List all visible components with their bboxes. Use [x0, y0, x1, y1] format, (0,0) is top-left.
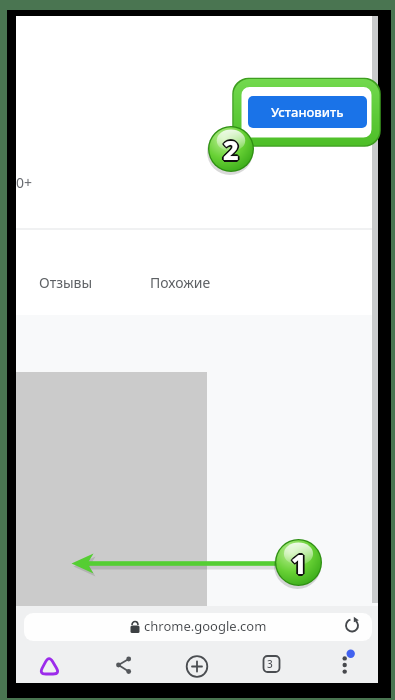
button[interactable] — [179, 647, 216, 683]
button[interactable]: Установить — [248, 96, 367, 128]
staticText: 1 — [289, 545, 305, 582]
staticText: 2 — [223, 129, 239, 166]
staticText: 2 — [223, 131, 239, 168]
staticText: chrome.google.com — [144, 617, 267, 635]
staticText: 2 — [225, 131, 241, 168]
staticText: 1 — [290, 546, 306, 583]
staticText: 1 — [290, 544, 306, 581]
staticText: 1 — [291, 547, 307, 584]
staticText: Отзывы — [39, 273, 93, 292]
staticText: Установить — [271, 103, 344, 121]
button[interactable] — [24, 613, 372, 641]
staticText: 1 — [291, 545, 307, 582]
staticText: 2 — [224, 132, 240, 169]
staticText: Похожие — [150, 273, 211, 292]
staticText: 1 — [291, 543, 307, 580]
staticText: 00+ — [16, 173, 33, 192]
button[interactable] — [327, 647, 364, 683]
button[interactable]: Отзывы — [32, 264, 104, 298]
button[interactable] — [105, 647, 142, 683]
button[interactable] — [31, 647, 68, 683]
staticText: 1 — [292, 544, 308, 581]
staticText: 2 — [222, 132, 238, 169]
staticText: 3 — [267, 657, 273, 671]
staticText: 2 — [223, 133, 239, 170]
staticText: 2 — [224, 130, 240, 167]
staticText: 2 — [221, 131, 237, 168]
button[interactable]: Похожие — [144, 264, 214, 298]
button[interactable] — [253, 647, 290, 683]
staticText: 2 — [222, 130, 238, 167]
staticText: 1 — [293, 545, 309, 582]
staticText: 1 — [292, 546, 308, 583]
